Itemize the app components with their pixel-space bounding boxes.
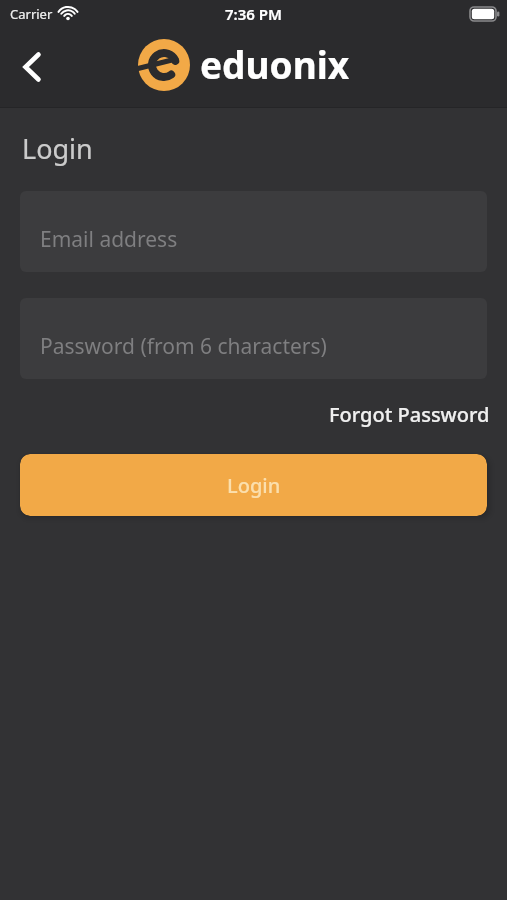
staticText: 7:36 PM (225, 4, 282, 24)
button[interactable]: Forgot Password (329, 401, 490, 428)
button[interactable]: Email address (20, 191, 487, 272)
button[interactable] (12, 47, 52, 87)
staticText: Email address (40, 225, 178, 254)
staticText: eduonix (200, 39, 350, 89)
staticText: Password (from 6 characters) (40, 332, 327, 361)
staticText: Carrier (10, 5, 53, 23)
staticText: Login (227, 472, 281, 499)
button[interactable]: Login (20, 454, 487, 516)
staticText: Login (22, 130, 93, 167)
button[interactable]: Password (from 6 characters) (20, 298, 487, 379)
